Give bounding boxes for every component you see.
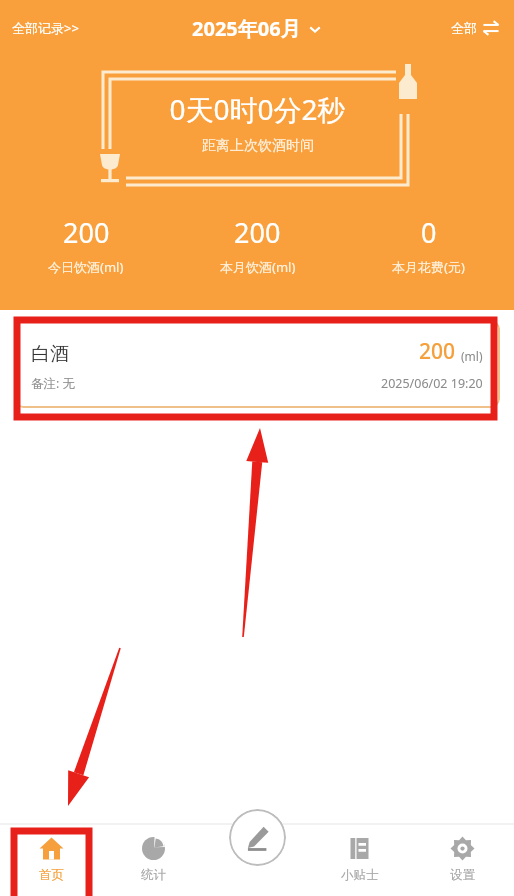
staticText: 今日饮酒(ml): [48, 258, 124, 276]
staticText: 备注: 无: [31, 375, 76, 392]
staticText: (ml): [461, 348, 483, 364]
staticText: 2025年06月: [192, 15, 301, 42]
button[interactable]: Add record: [229, 809, 286, 866]
staticText: 2025/06/02 19:20: [381, 375, 483, 392]
staticText: 白酒: [31, 342, 69, 366]
staticText: 全部记录>>: [12, 19, 79, 37]
button[interactable]: 全部记录>>: [8, 13, 83, 43]
staticText: 本月花费(元): [392, 258, 465, 276]
button[interactable]: 全部: [447, 13, 504, 43]
button[interactable]: 200: [172, 210, 343, 280]
button[interactable]: 设置: [411, 824, 514, 883]
staticText: 200: [419, 337, 456, 366]
staticText: 设置: [450, 867, 475, 883]
button[interactable]: 小贴士: [308, 824, 411, 883]
staticText: 0: [421, 214, 437, 251]
staticText: 0天0时0分2秒: [169, 90, 346, 128]
staticText: 全部: [451, 20, 477, 36]
staticText: 小贴士: [341, 867, 379, 883]
staticText: 统计: [141, 867, 166, 883]
other: Switch filter: [482, 19, 500, 37]
button[interactable]: 统计: [102, 824, 205, 883]
button[interactable]: 0: [343, 210, 514, 280]
staticText: 距离上次饮酒时间: [202, 137, 314, 155]
staticText: 首页: [39, 867, 64, 883]
button[interactable]: 白酒: [14, 320, 500, 408]
button[interactable]: 200: [0, 210, 172, 280]
staticText: 本月饮酒(ml): [220, 258, 296, 276]
button[interactable]: 2025年06月: [186, 11, 328, 46]
staticText: 200: [63, 214, 110, 251]
button[interactable]: 首页: [0, 824, 102, 883]
staticText: 200: [234, 214, 281, 251]
